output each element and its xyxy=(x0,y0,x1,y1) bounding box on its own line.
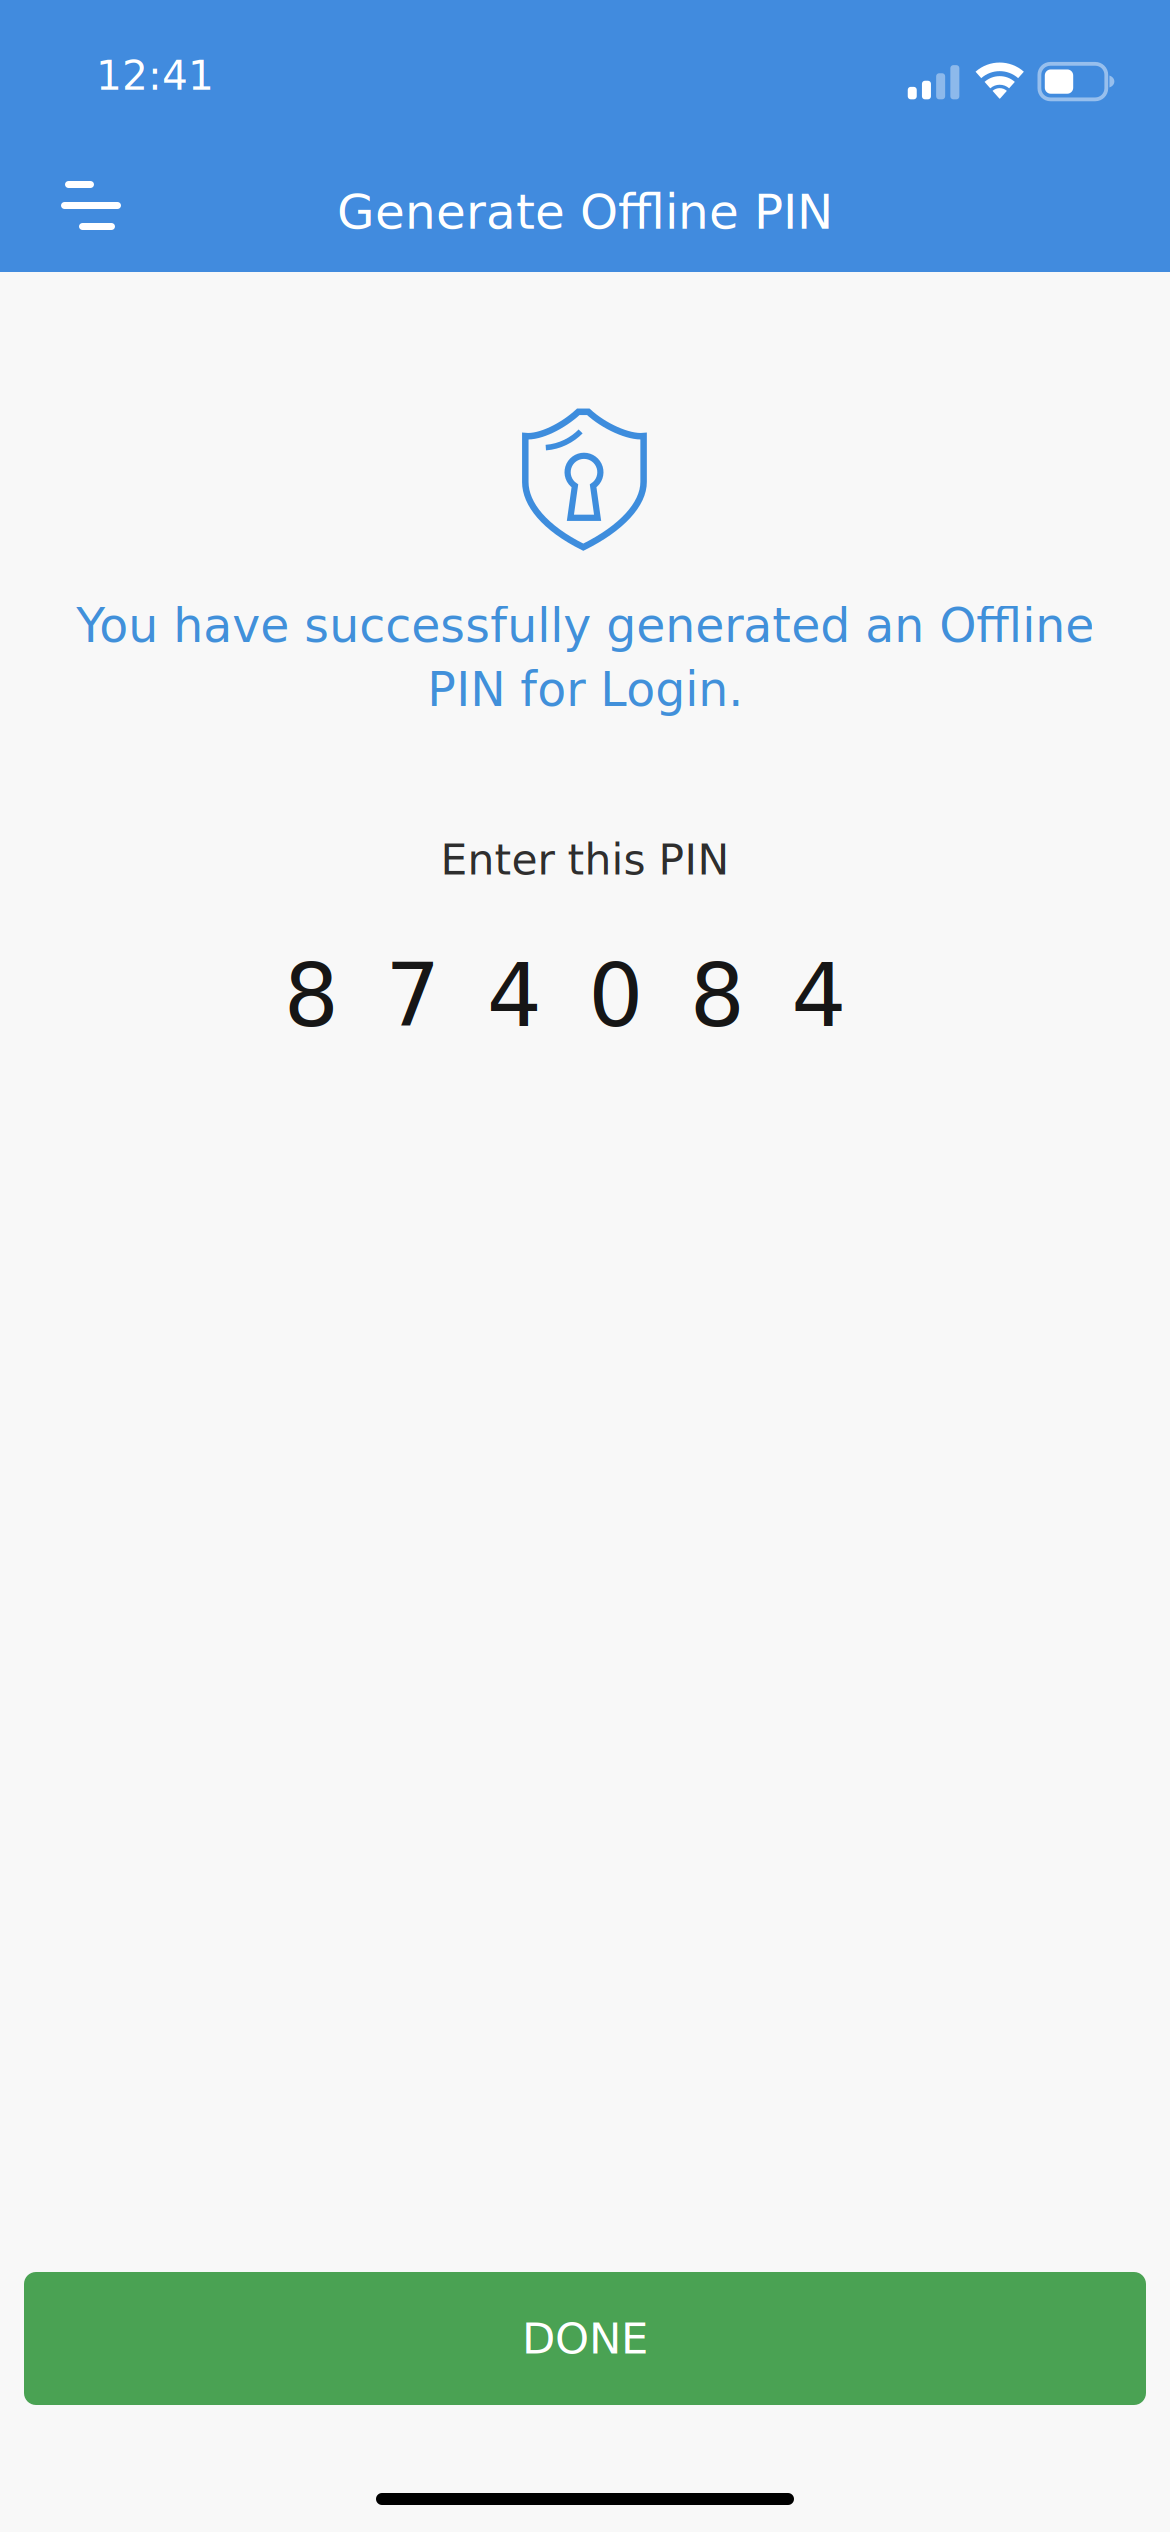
staticText: 874084 xyxy=(284,946,846,1046)
button[interactable]: DONE xyxy=(24,2272,1146,2405)
staticText: DONE xyxy=(522,2313,648,2364)
staticText: Generate Offline PIN xyxy=(337,184,833,240)
button[interactable]: Menu xyxy=(0,20,161,252)
staticText: Enter this PIN xyxy=(440,835,729,885)
staticText: 12:41 xyxy=(96,52,214,99)
staticText: You have successfully generated an Offli… xyxy=(76,598,1094,717)
